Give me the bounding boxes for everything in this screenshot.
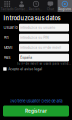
staticText: Móvil (3, 45, 12, 50)
staticText: Pin (3, 35, 8, 40)
button[interactable]: España (19, 54, 69, 61)
staticText: Registrar (25, 108, 47, 114)
button[interactable]: ¿No tiene usuario? Dese de alta (0, 99, 72, 103)
staticText: País (3, 55, 10, 60)
staticText: Usuario (3, 25, 17, 30)
staticText: ¿No tiene usuario? Dese de alta (9, 99, 62, 103)
staticText: Recientes (29, 7, 43, 11)
staticText: Contactos (14, 7, 29, 11)
button[interactable]: Contactos (14, 0, 29, 12)
staticText: Introduzca sus datos (3, 15, 60, 21)
button[interactable]: Recientes (29, 0, 43, 12)
button[interactable]: Registro (58, 0, 72, 12)
staticText: Registro (58, 7, 71, 11)
staticText: Acepto el aviso legal (8, 67, 42, 71)
button[interactable]: Chat (43, 0, 58, 12)
button[interactable]: introduzca su usuario (19, 24, 69, 31)
button[interactable]: Acepto el aviso legal (0, 65, 72, 71)
staticText: Chat (47, 7, 54, 11)
staticText: introduzca su usuario (20, 26, 55, 30)
button[interactable]: introduzca su PIN (19, 34, 69, 41)
staticText: introduzca su PIN (20, 36, 48, 40)
button[interactable]: Registrar (3, 105, 69, 116)
staticText: Tu nº de móvil se usará para validar la … (16, 62, 70, 65)
button[interactable]: introduzca su nº de móvil (19, 44, 69, 51)
staticText: España (20, 56, 32, 60)
button[interactable]: Teclado (0, 0, 14, 12)
staticText: introduzca su nº de móvil (20, 46, 61, 50)
staticText: Teclado (1, 7, 14, 11)
